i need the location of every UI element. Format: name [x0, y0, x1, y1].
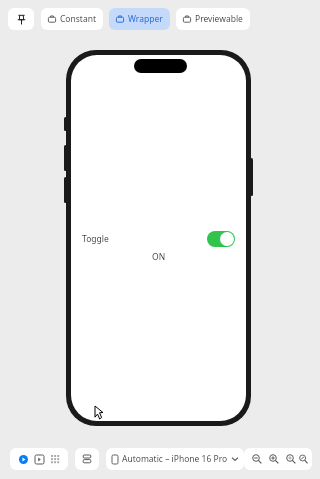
staticText: Constant	[60, 13, 96, 25]
button[interactable]: Pin	[8, 8, 34, 30]
button[interactable]: Select	[31, 451, 47, 467]
button[interactable]: Grid	[47, 451, 63, 467]
staticText: ON	[152, 251, 166, 263]
button[interactable]: Live preview	[15, 451, 31, 467]
button[interactable]: Constant	[41, 8, 103, 30]
staticText: Toggle	[82, 233, 109, 245]
button[interactable]: Device settings	[75, 448, 99, 470]
staticText: Previewable	[195, 13, 243, 25]
button[interactable]: Zoom out	[248, 449, 265, 469]
button[interactable]: Automatic – iPhone 16 Pro	[106, 448, 244, 470]
button[interactable]: Previewable	[176, 8, 250, 30]
button[interactable]: Zoom to fit	[282, 449, 299, 469]
button[interactable]: Toggle switch, on	[207, 231, 235, 247]
button[interactable]: Toggle	[71, 231, 246, 247]
staticText: Automatic – iPhone 16 Pro	[122, 453, 228, 465]
button[interactable]: Actual size	[299, 449, 308, 469]
button[interactable]: Wrapper	[109, 8, 170, 30]
staticText: Wrapper	[128, 13, 163, 25]
button[interactable]: Zoom in	[265, 449, 282, 469]
